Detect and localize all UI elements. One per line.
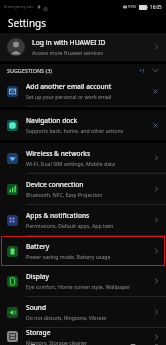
staticText: Supports back, home, and other actions [26,127,124,134]
staticText: 16:05 [150,4,162,10]
staticText: Wi-Fi, Dual SIM settings, Mobile data [26,160,115,167]
staticText: Bluetooth, NFC, Easy Projection [26,191,103,198]
staticText: Log in with HUAWEI ID [32,38,106,47]
staticText: Power saving mode, Battery usage [26,253,111,260]
button[interactable]: Log in with HUAWEI ID [0,33,166,61]
button[interactable]: SUGGESTIONS (3) [0,64,166,76]
staticText: Set up your personal or work email [26,93,112,100]
other: Dismiss [152,88,159,95]
button[interactable]: Navigation dock [0,110,166,140]
staticText: Eye comfort, Home screen style, Wallpape… [26,283,131,290]
staticText: Permissions, Default apps, App twin [26,222,114,229]
button[interactable]: Battery [0,236,166,266]
staticText: +1 [139,67,145,74]
staticText: Settings [8,16,47,30]
staticText: SUGGESTIONS (3) [7,67,52,74]
other: Collapse [152,68,159,73]
staticText: Wireless & networks [26,149,91,158]
staticText: Storage [26,328,51,337]
staticText: Add another email account [26,82,112,91]
staticText: Apps & notifications [26,211,90,220]
staticText: Battery [26,242,50,251]
staticText: 99% [128,4,137,10]
button[interactable]: Sound [0,297,166,328]
staticText: Do not disturb, Ringtone, Vibrate [26,314,107,321]
staticText: Memory, Storage cleaner [26,339,88,345]
button[interactable]: Add another email account [0,76,166,107]
staticText: Emergency cal.. [4,4,35,10]
button[interactable]: Device connection [0,174,166,205]
other: Dismiss [152,122,159,129]
staticText: Display [26,272,49,281]
button[interactable]: Wireless & networks [0,143,166,174]
staticText: Device connection [26,180,84,189]
staticText: Navigation dock [26,116,78,125]
button[interactable]: Apps & notifications [0,205,166,236]
button[interactable]: Storage [0,328,166,345]
staticText: Access more Huawei services [32,49,103,56]
button[interactable]: Display [0,266,166,297]
staticText: Sound [26,303,47,312]
